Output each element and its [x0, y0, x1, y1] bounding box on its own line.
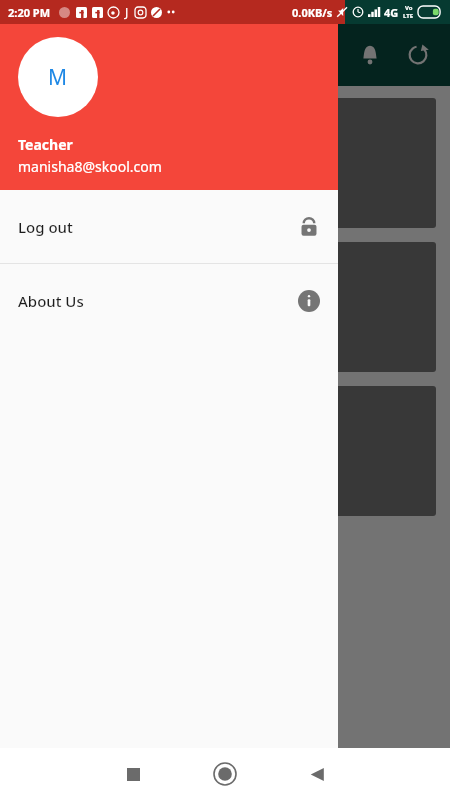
button[interactable]: Back	[289, 748, 345, 800]
button[interactable]: Announcement	[14, 242, 436, 372]
button[interactable]: About Us	[0, 264, 338, 337]
staticText: About Us	[18, 291, 84, 311]
button[interactable]: Recents	[105, 748, 161, 800]
staticText: Assignment	[44, 182, 122, 201]
button[interactable]: Feedback	[14, 386, 436, 516]
staticText: M	[48, 63, 68, 92]
staticText: 2:20 PM	[8, 5, 51, 20]
staticText: 0.0KB/s	[292, 5, 333, 20]
button[interactable]: Refresh	[394, 31, 442, 79]
staticText: LTE	[403, 12, 414, 20]
button[interactable]: Assignment	[14, 98, 436, 228]
staticText: Teacher	[18, 135, 73, 154]
staticText: Vo	[405, 4, 413, 12]
staticText: manisha8@skool.com	[18, 157, 162, 176]
staticText: 4G	[384, 5, 399, 20]
button[interactable]: Log out	[0, 190, 338, 263]
button[interactable]: Notifications	[346, 31, 394, 79]
staticText: J	[125, 4, 129, 20]
staticText: Log out	[18, 217, 73, 237]
button[interactable]: Home	[197, 748, 253, 800]
